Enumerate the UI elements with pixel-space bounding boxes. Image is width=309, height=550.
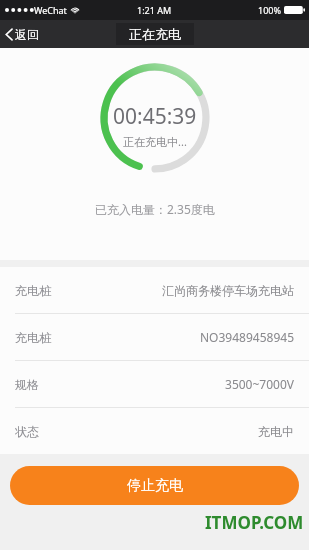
staticText: 汇尚商务楼停车场充电站 [162,283,294,298]
button[interactable]: 停止充电 [10,466,299,505]
button[interactable]: 充电桩 [0,267,309,313]
staticText: 已充入电量：2.35度电 [95,201,215,217]
staticText: 3500~7000V [225,376,294,392]
staticText: 状态 [15,424,39,439]
staticText: 正在充电 [129,26,181,42]
button[interactable]: 规格 [0,360,309,407]
button[interactable]: 返回 [0,24,47,45]
staticText: 停止充电 [127,477,183,495]
staticText: WeChat [34,4,67,16]
staticText: 充电中 [258,424,294,439]
staticText: 返回 [15,27,39,42]
staticText: ITMOP.COM [205,511,304,534]
staticText: NO39489458945 [200,329,294,345]
staticText: 00:45:39 [113,102,197,131]
staticText: 规格 [15,377,39,392]
button[interactable]: 状态 [0,407,309,454]
staticText: 正在充电中... [123,134,187,149]
staticText: 1:21 AM [137,4,172,16]
staticText: 100% [258,4,281,16]
staticText: 充电桩 [15,283,51,298]
staticText: 充电桩 [15,330,51,345]
button[interactable]: 充电桩 [0,313,309,360]
